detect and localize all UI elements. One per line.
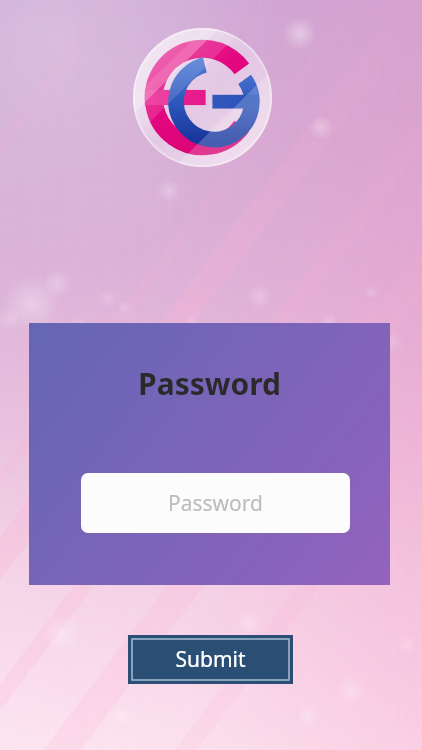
staticText: Submit [175,645,246,674]
button[interactable]: Submit [128,635,293,684]
other: App logo [133,28,272,167]
staticText: Password [138,363,281,404]
button[interactable]: Password [81,473,350,533]
staticText: Password [168,489,263,518]
